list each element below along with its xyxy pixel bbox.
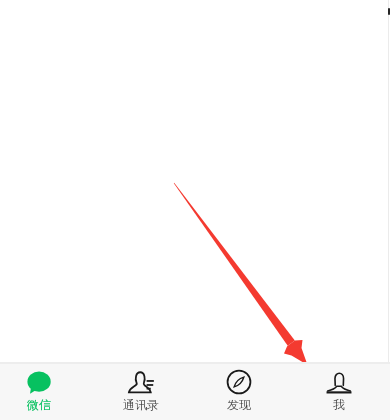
staticText: 微信 bbox=[27, 397, 51, 412]
button[interactable]: 微信 bbox=[0, 364, 81, 420]
staticText: 通讯录 bbox=[123, 397, 159, 412]
staticText: 发现 bbox=[227, 397, 251, 412]
button[interactable]: 通讯录 bbox=[99, 364, 183, 420]
staticText: 我 bbox=[333, 397, 345, 412]
button[interactable]: 我 bbox=[297, 364, 381, 420]
button[interactable]: 发现 bbox=[197, 364, 281, 420]
